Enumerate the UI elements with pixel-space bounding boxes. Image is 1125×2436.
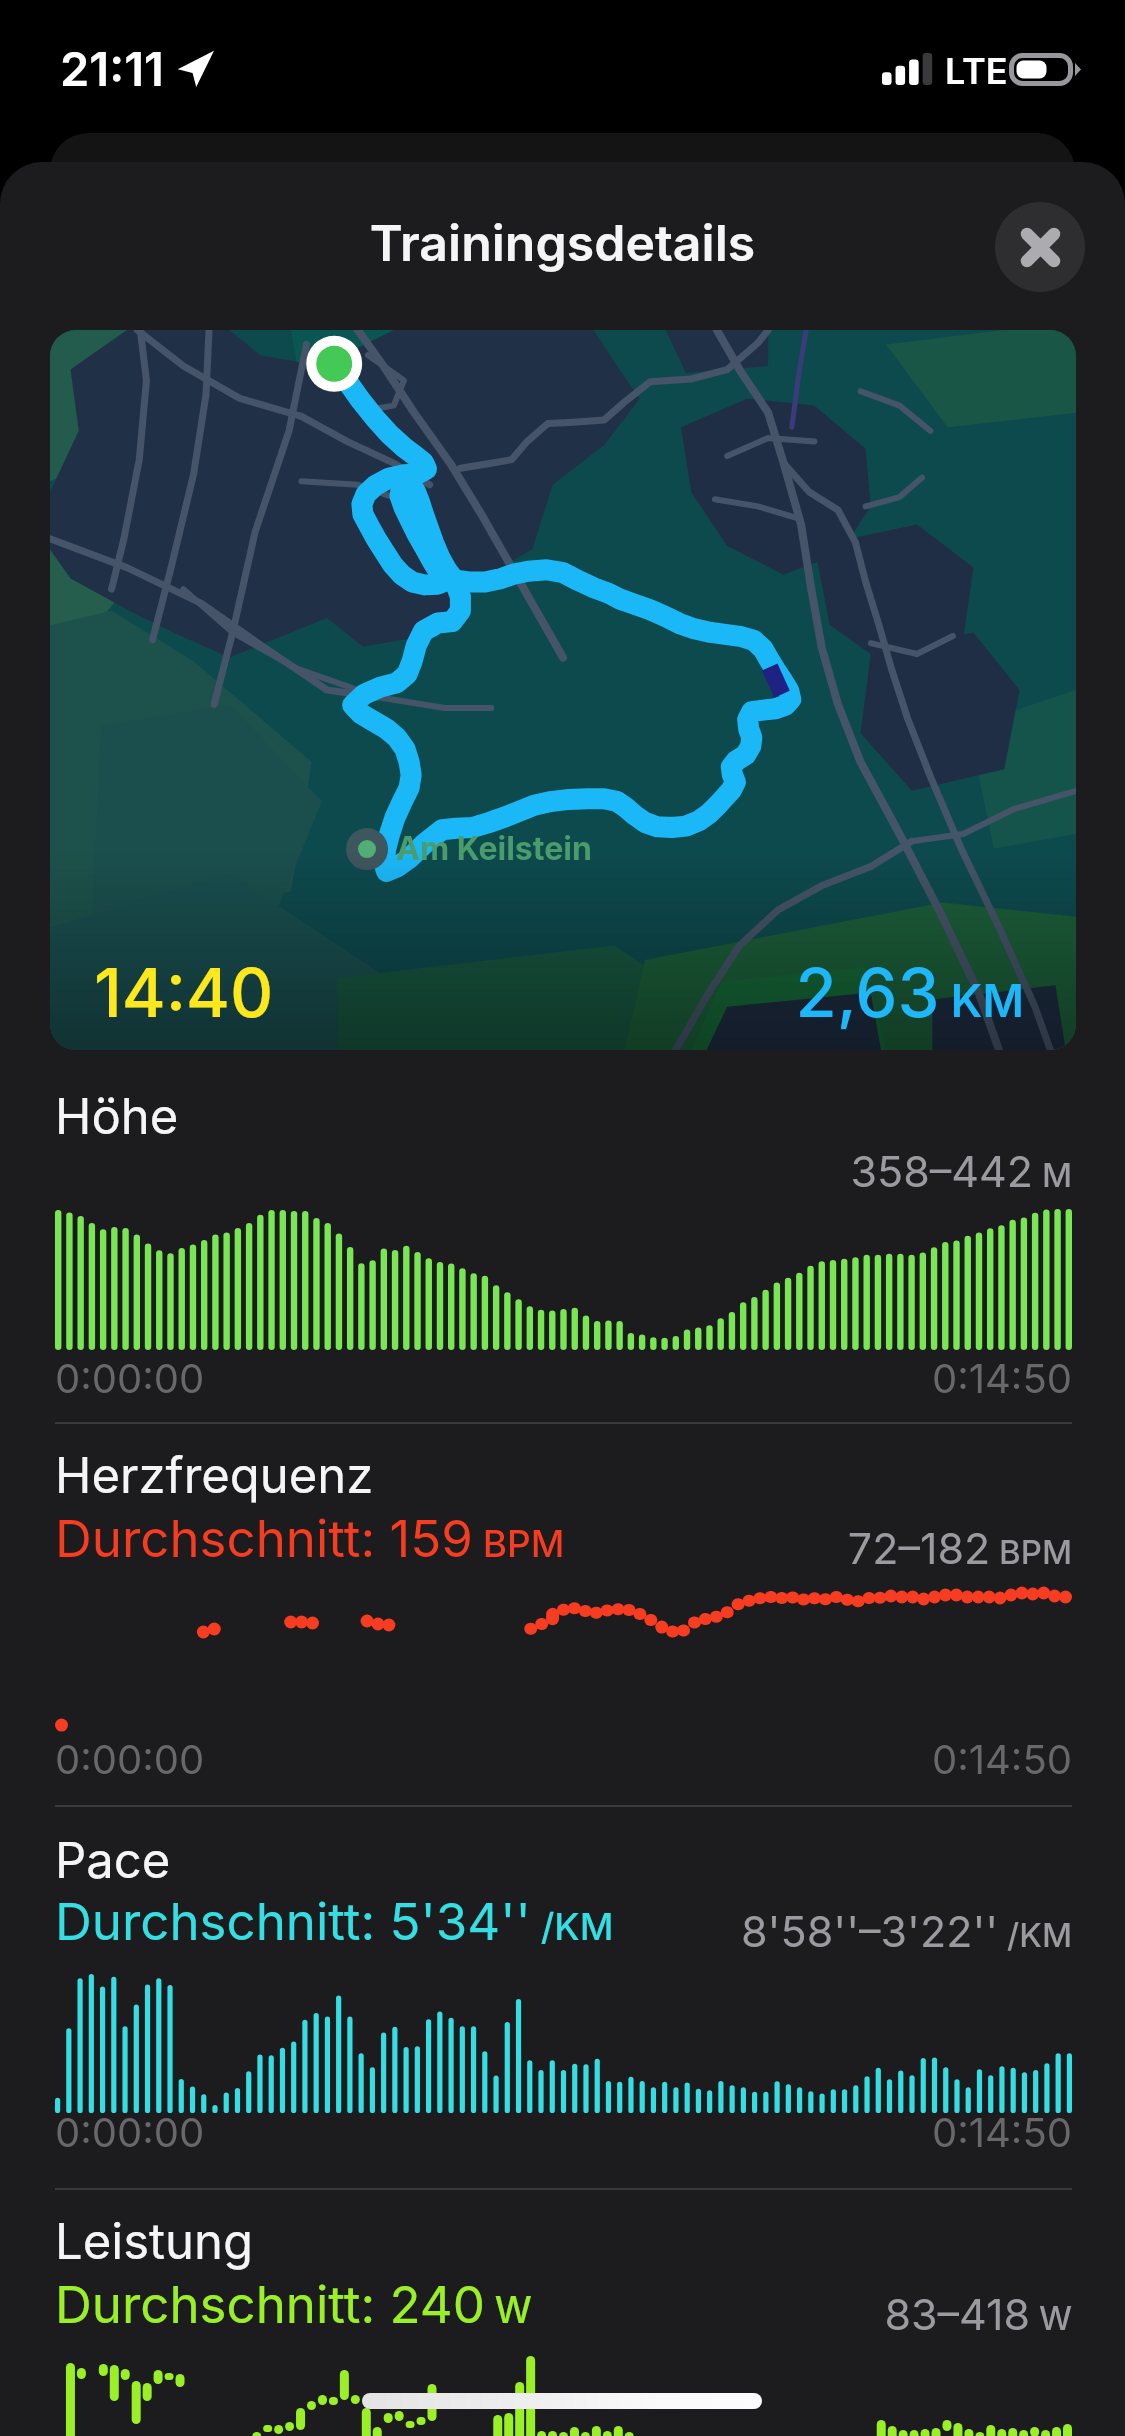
button[interactable]: Schließen xyxy=(995,202,1085,292)
staticText: 8'58''–3'22'' /KM xyxy=(512,1905,1072,1957)
staticText: Durchschnitt: 159 BPM xyxy=(55,1508,565,1570)
staticText: 2,63 KM xyxy=(725,952,1024,1033)
staticText: Pace xyxy=(55,1831,171,1890)
staticText: 0:14:50 xyxy=(932,1735,1072,1783)
staticText: 0:14:50 xyxy=(932,1354,1072,1402)
staticText: 72–182 BPM xyxy=(512,1522,1072,1574)
staticText: Trainingsdetails xyxy=(0,213,1125,273)
staticText: 358–442 M xyxy=(512,1145,1072,1197)
staticText: 0:00:00 xyxy=(55,2108,205,2156)
staticText: 83–418 W xyxy=(512,2288,1072,2340)
staticText: 21:11 xyxy=(60,40,164,97)
staticText: 14:40 xyxy=(94,952,274,1033)
button[interactable]: Am Keilstein xyxy=(50,330,1076,1050)
staticText: LTE xyxy=(945,49,1008,93)
staticText: Durchschnitt: 240 W xyxy=(55,2274,532,2336)
staticText: Am Keilstein xyxy=(396,829,592,868)
staticText: Leistung xyxy=(55,2212,254,2271)
staticText: Durchschnitt: 5'34'' /KM xyxy=(55,1891,614,1953)
staticText: 0:00:00 xyxy=(55,1354,205,1402)
staticText: 0:14:50 xyxy=(932,2108,1072,2156)
staticText: 0:00:00 xyxy=(55,1735,205,1783)
staticText: Herzfrequenz xyxy=(55,1446,374,1505)
staticText: Höhe xyxy=(55,1087,179,1146)
